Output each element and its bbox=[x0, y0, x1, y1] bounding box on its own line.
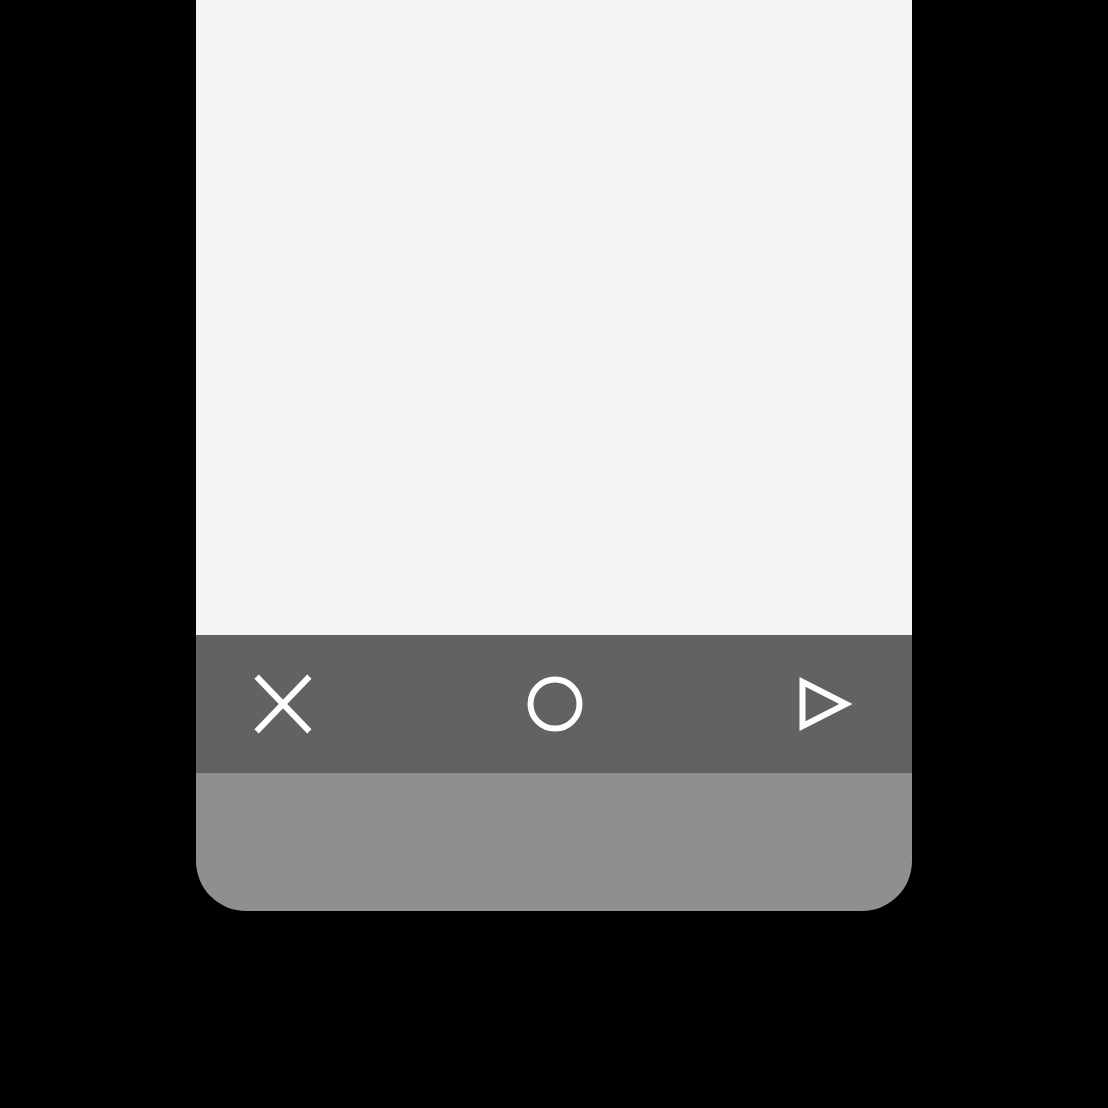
button[interactable] bbox=[233, 654, 333, 754]
button[interactable] bbox=[505, 654, 605, 754]
button[interactable] bbox=[776, 654, 876, 754]
